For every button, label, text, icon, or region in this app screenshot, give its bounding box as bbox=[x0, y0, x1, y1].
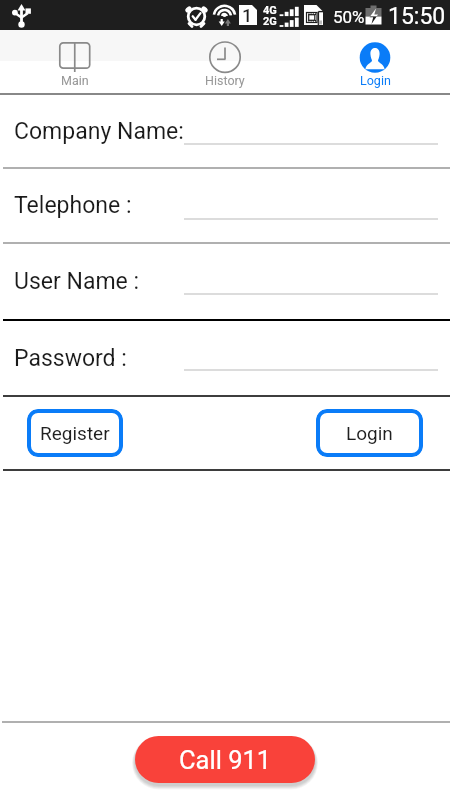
staticText: User Name : bbox=[14, 268, 140, 295]
staticText: Register bbox=[40, 422, 110, 444]
button[interactable]: Login bbox=[300, 30, 450, 61]
staticText: Main bbox=[61, 73, 89, 88]
staticText: 2G bbox=[263, 15, 277, 28]
staticText: Login bbox=[346, 422, 393, 444]
button[interactable]: Call 911 bbox=[135, 736, 315, 783]
button[interactable]: Company Name: bbox=[184, 113, 438, 145]
staticText: 4G bbox=[263, 4, 277, 17]
staticText: Login bbox=[360, 73, 391, 88]
staticText: History bbox=[205, 73, 245, 88]
staticText: Company Name: bbox=[14, 118, 184, 145]
staticText: Password : bbox=[14, 345, 127, 372]
button[interactable]: Login bbox=[316, 409, 423, 457]
button[interactable]: Telephone : bbox=[184, 188, 438, 220]
staticText: Call 911 bbox=[179, 745, 272, 775]
staticText: Telephone : bbox=[14, 192, 132, 219]
staticText: 50% bbox=[333, 7, 365, 27]
staticText: 15:50 bbox=[388, 3, 446, 30]
button[interactable]: User Name : bbox=[184, 263, 438, 295]
staticText: 1 bbox=[242, 5, 253, 25]
button[interactable]: Register bbox=[27, 409, 123, 457]
button[interactable]: Main bbox=[0, 30, 150, 61]
button[interactable]: History bbox=[150, 30, 300, 61]
button[interactable]: Password : bbox=[184, 339, 438, 371]
